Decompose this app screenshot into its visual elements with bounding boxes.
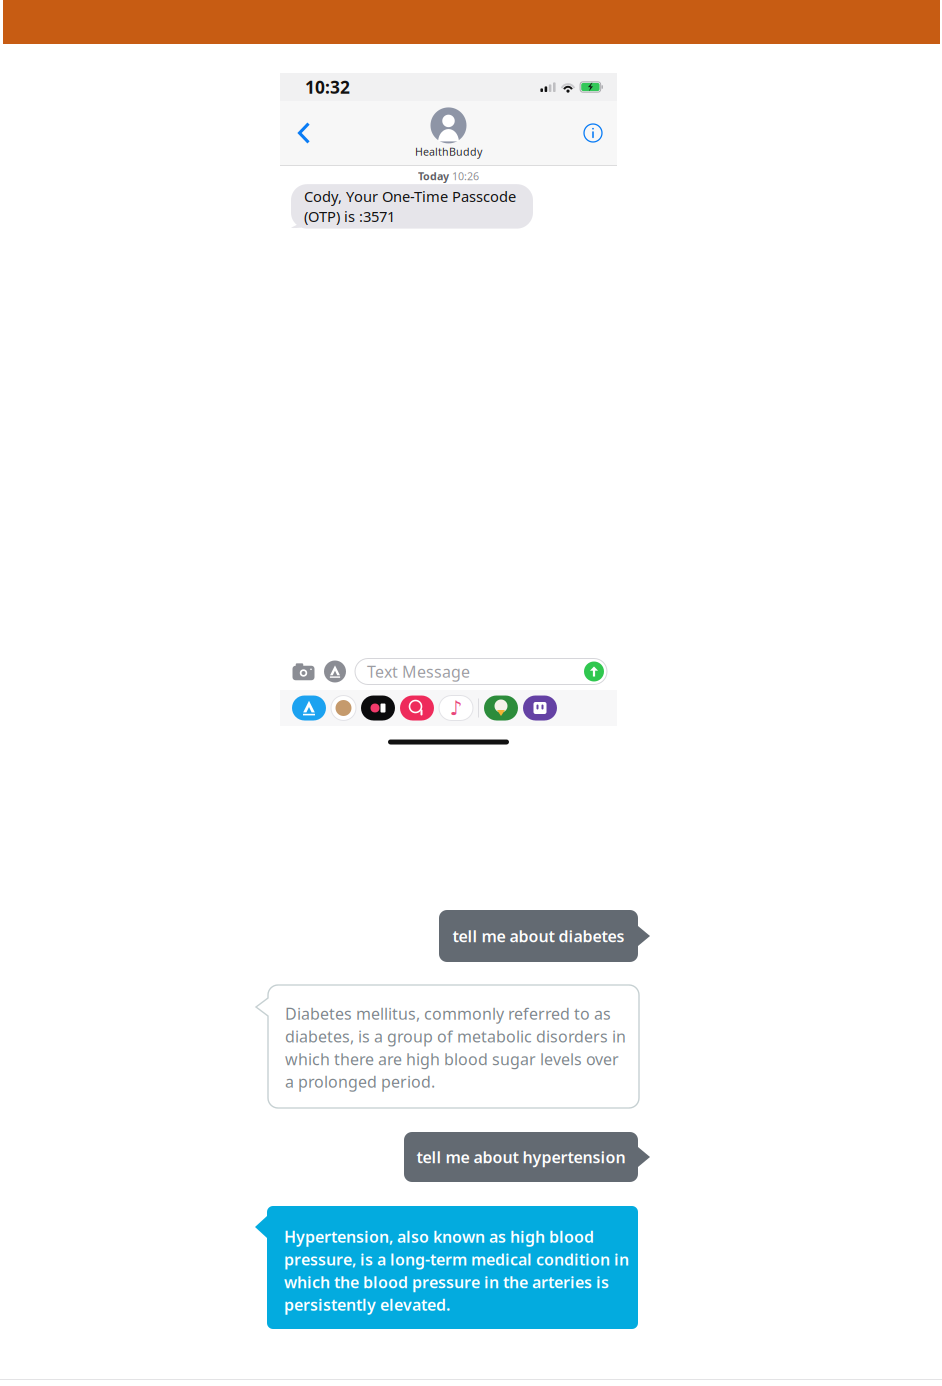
staticText: Cody, Your One-Time Passcode (OTP) is :3…: [304, 187, 516, 226]
staticText: HealthBuddy: [415, 144, 482, 159]
button[interactable]: Back: [286, 111, 322, 155]
staticText: Hypertension, also known as high blood p…: [284, 1226, 629, 1315]
staticText: tell me about hypertension: [416, 1146, 625, 1168]
staticText: Text Message: [367, 661, 470, 682]
button[interactable]: Camera: [292, 662, 315, 681]
button[interactable]: Apps: [324, 660, 346, 682]
button[interactable]: Conversation details: [575, 111, 611, 155]
staticText: 10:32: [305, 75, 350, 98]
staticText: Today: [418, 169, 449, 183]
button[interactable]: Send: [584, 661, 604, 681]
staticText: ♪: [449, 697, 462, 719]
staticText: 10:26: [452, 169, 479, 183]
staticText: Diabetes mellitus, commonly referred to …: [285, 1003, 626, 1092]
staticText: tell me about diabetes: [452, 925, 624, 947]
